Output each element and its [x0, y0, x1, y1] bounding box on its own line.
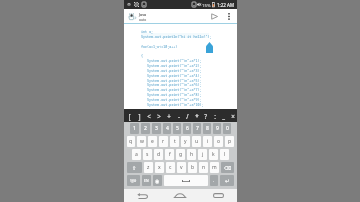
button[interactable]: Home [161, 189, 199, 202]
button[interactable]: ◉ [153, 175, 162, 186]
button[interactable]: !@# [127, 175, 140, 186]
button[interactable]: ↵ [220, 175, 234, 186]
button[interactable]: f [165, 149, 174, 160]
staticText: ⌫ [224, 165, 232, 171]
staticText: q [129, 138, 133, 145]
staticText: e [151, 138, 154, 145]
staticText: [ [128, 112, 131, 120]
button[interactable]: 7 [193, 123, 201, 134]
staticText: m [212, 164, 217, 171]
button[interactable]: i [203, 136, 212, 147]
button[interactable]: x [155, 162, 164, 173]
staticText: 5 [176, 125, 179, 132]
button[interactable]: : [210, 109, 219, 122]
button[interactable]: Run [208, 9, 221, 24]
button[interactable]: p [225, 136, 234, 147]
staticText: z [147, 164, 150, 171]
staticText: { [141, 53, 144, 58]
staticText: f [169, 151, 171, 158]
staticText: k [212, 151, 215, 158]
staticText: × [231, 112, 235, 120]
staticText: y [184, 138, 187, 145]
button[interactable]: ] [134, 109, 144, 122]
button[interactable]: 6 [183, 123, 191, 134]
staticText: System.out.println("hi it hello!"); [141, 34, 212, 39]
staticText: ↵ [225, 178, 230, 184]
button[interactable]: d [154, 149, 163, 160]
button[interactable]: y [181, 136, 190, 147]
staticText: < [147, 112, 151, 120]
button[interactable]: _ [219, 109, 228, 122]
staticText: 9 [216, 125, 219, 132]
button[interactable]: 1 [130, 123, 139, 134]
button[interactable]: × [228, 109, 237, 122]
button[interactable]: l [220, 149, 229, 160]
staticText: r [162, 138, 165, 145]
staticText: 0 [226, 125, 229, 132]
button[interactable]: > [154, 109, 164, 122]
button[interactable]: ? [201, 109, 210, 122]
button[interactable]: a [132, 149, 141, 160]
button[interactable]: 8 [203, 123, 211, 134]
staticText: 2 [144, 125, 147, 132]
button[interactable]: e [148, 136, 157, 147]
button[interactable] [164, 175, 208, 186]
button[interactable]: 4 [163, 123, 171, 134]
button[interactable]: b [188, 162, 197, 173]
staticText: auto [139, 18, 147, 22]
button[interactable]: + [164, 109, 174, 122]
staticText: t [174, 138, 176, 145]
staticText: _ [222, 112, 225, 120]
staticText: > [157, 112, 161, 120]
button[interactable]: k [209, 149, 218, 160]
staticText: i [207, 138, 209, 145]
button[interactable]: ⇧ [127, 162, 142, 173]
button[interactable]: q [127, 136, 135, 147]
button[interactable]: n [199, 162, 208, 173]
staticText: ? [204, 112, 207, 120]
button[interactable]: 2 [141, 123, 150, 134]
button[interactable]: w [137, 136, 146, 147]
button[interactable]: r [159, 136, 168, 147]
button[interactable]: m [210, 162, 219, 173]
button[interactable]: v [177, 162, 186, 173]
button[interactable]: g [176, 149, 185, 160]
staticText: System.out.print("\n"+a*4); [141, 73, 202, 78]
button[interactable]: h [187, 149, 196, 160]
button[interactable]: Back [124, 189, 161, 202]
staticText: System.out.print("\n"+a*5); [141, 78, 202, 83]
button[interactable]: ⌫ [221, 162, 234, 173]
staticText: b [191, 164, 195, 171]
staticText: : [214, 112, 216, 120]
button[interactable]: u [192, 136, 201, 147]
button[interactable]: . [210, 175, 218, 186]
button[interactable]: [ [124, 109, 134, 122]
button[interactable]: o [214, 136, 223, 147]
button[interactable]: < [144, 109, 154, 122]
button[interactable]: c [166, 162, 175, 173]
button[interactable]: Recent apps [199, 189, 237, 202]
button[interactable]: 5 [173, 123, 181, 134]
button[interactable]: 3 [152, 123, 161, 134]
button[interactable]: 0 [223, 123, 231, 134]
staticText: System.out.print("\n"+a*3); [141, 68, 202, 73]
staticText: o [217, 138, 221, 145]
staticText: c [169, 164, 172, 171]
staticText: 4 [166, 125, 169, 132]
button[interactable]: 9 [213, 123, 221, 134]
button[interactable]: EN [142, 175, 151, 186]
staticText: System.out.print("\n"+a*7); [141, 87, 202, 92]
staticText: ⇧ [132, 165, 137, 171]
button[interactable]: More options [224, 9, 234, 24]
staticText: System.out.print("\n"+a*6); [141, 82, 202, 87]
button[interactable]: z [144, 162, 153, 173]
button[interactable]: / [183, 109, 192, 122]
button[interactable]: s [143, 149, 152, 160]
staticText: w [140, 138, 144, 145]
button[interactable]: t [170, 136, 179, 147]
button[interactable]: * [192, 109, 201, 122]
button[interactable]: j [198, 149, 207, 160]
button[interactable]: - [174, 109, 183, 122]
staticText: / [186, 112, 189, 120]
staticText: System.out.print("\n"+a*8); [141, 92, 202, 97]
